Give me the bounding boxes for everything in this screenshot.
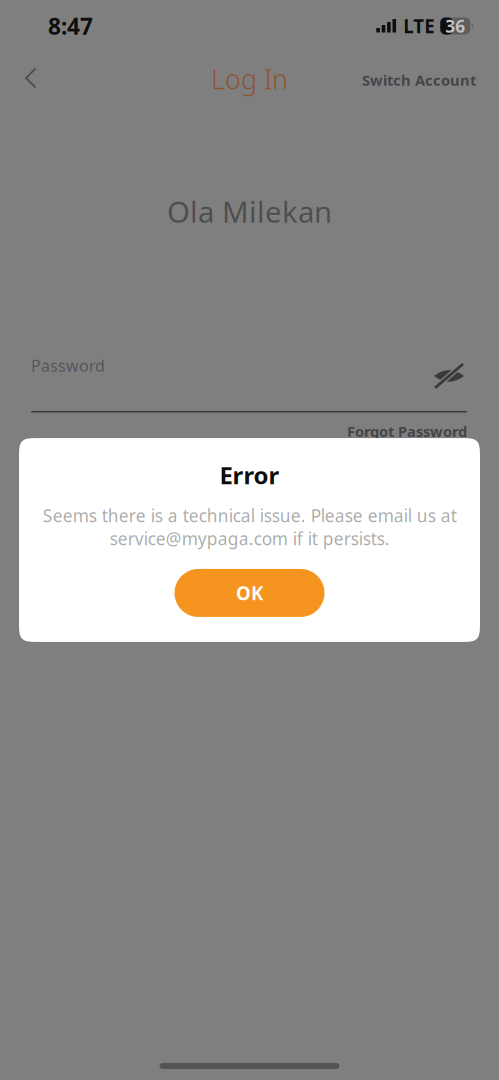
staticText: 8:47 bbox=[48, 11, 93, 41]
button[interactable]: Forgot Password bbox=[347, 413, 467, 441]
staticText: Forgot Password bbox=[347, 422, 467, 441]
staticText: Switch Account bbox=[362, 70, 476, 90]
staticText: Error bbox=[219, 459, 279, 491]
staticText: 36 bbox=[445, 14, 465, 37]
staticText: Password bbox=[31, 355, 105, 376]
button[interactable]: Show password bbox=[431, 351, 467, 391]
staticText: Seems there is a technical issue. Please… bbox=[42, 504, 456, 550]
staticText: LTE bbox=[403, 14, 434, 38]
button[interactable]: OK bbox=[174, 569, 324, 617]
staticText: Log In bbox=[211, 61, 288, 97]
staticText: Ola Milekan bbox=[167, 192, 332, 231]
button[interactable]: Back bbox=[0, 54, 56, 100]
button[interactable]: Switch Account bbox=[339, 54, 499, 100]
staticText: OK bbox=[236, 581, 263, 605]
